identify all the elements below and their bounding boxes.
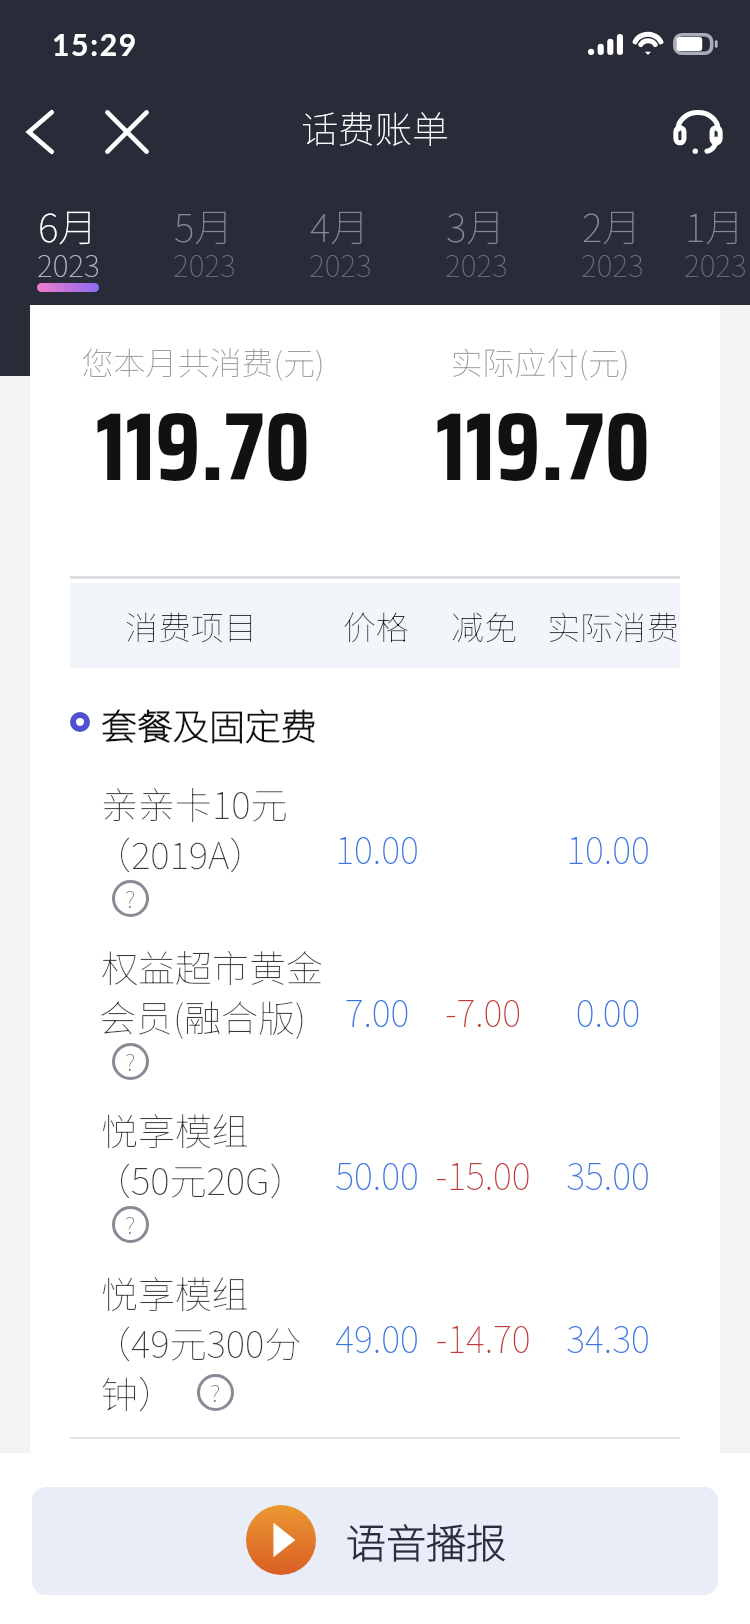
button[interactable]: 4月 [272, 188, 408, 305]
staticText: 49.00 [317, 1311, 437, 1357]
staticText: 4月 [310, 197, 370, 253]
staticText: 34.30 [548, 1311, 668, 1357]
staticText: 2月 [582, 197, 642, 253]
staticText: 悦享模组 [101, 1265, 249, 1315]
staticText: 权益超市黄金 [101, 939, 323, 989]
button[interactable]: 3月 [408, 188, 544, 305]
staticText: -15.00 [423, 1148, 543, 1194]
staticText: 50.00 [317, 1148, 437, 1194]
button[interactable]: 1月 [680, 188, 750, 305]
staticText: 套餐及固定费 [101, 698, 318, 750]
staticText: （49元300分 [94, 1315, 302, 1365]
staticText: 2023 [173, 242, 236, 285]
staticText: 10.00 [548, 822, 668, 868]
staticText: 2023 [309, 242, 372, 285]
staticText: 实际消费 [533, 602, 693, 650]
staticText: 35.00 [548, 1148, 668, 1194]
staticText: 15:29 [52, 26, 138, 62]
staticText: ? [210, 1374, 221, 1409]
staticText: ? [125, 1206, 136, 1241]
staticText: 1月 [685, 197, 745, 253]
staticText: 5月 [174, 197, 234, 253]
button[interactable]: 语音播报 [32, 1487, 718, 1595]
staticText: 语音播报 [346, 1512, 506, 1570]
staticText: 您本月共消费(元) [48, 338, 358, 382]
staticText: 2023 [37, 242, 100, 285]
staticText: 悦享模组 [101, 1102, 249, 1152]
staticText: -14.70 [423, 1311, 543, 1357]
staticText: 2023 [581, 242, 644, 285]
staticText: 119.70 [388, 371, 698, 511]
button[interactable]: Customer service [669, 103, 727, 161]
staticText: 2023 [445, 242, 508, 285]
button[interactable]: 2月 [544, 188, 680, 305]
staticText: -7.00 [423, 985, 543, 1031]
staticText: 7.00 [317, 985, 437, 1031]
staticText: 亲亲卡10元 [101, 776, 288, 826]
staticText: 3月 [446, 197, 506, 253]
staticText: 10.00 [317, 822, 437, 868]
staticText: 价格 [316, 602, 436, 650]
staticText: 2023 [684, 242, 747, 285]
staticText: ? [125, 1043, 136, 1078]
staticText: 消费项目 [91, 602, 291, 650]
staticText: 会员(融合版) [99, 989, 307, 1039]
staticText: （2019A） [94, 826, 267, 876]
button[interactable]: Back [15, 108, 63, 156]
staticText: （50元20G） [94, 1152, 307, 1202]
button[interactable]: 套餐及固定费 [70, 700, 370, 756]
staticText: 119.70 [48, 371, 358, 511]
staticText: 0.00 [548, 985, 668, 1031]
button[interactable]: 5月 [136, 188, 272, 305]
staticText: 实际应付(元) [385, 338, 695, 382]
button[interactable]: 6月 [0, 188, 136, 305]
staticText: 6月 [38, 197, 98, 253]
staticText: 钟） [101, 1365, 175, 1419]
button[interactable]: Close [103, 108, 151, 156]
staticText: 减免 [424, 602, 544, 650]
staticText: 话费账单 [301, 100, 449, 154]
staticText: ? [125, 880, 136, 915]
